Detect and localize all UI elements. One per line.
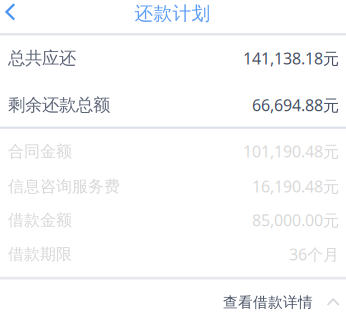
staticText: 合同金额: [8, 141, 72, 161]
staticText: 85,000.00元: [252, 209, 339, 231]
staticText: 36个月: [289, 244, 339, 265]
staticText: 101,190.48元: [243, 141, 339, 162]
button[interactable]: Back: [0, 0, 44, 33]
staticText: 借款期限: [8, 244, 72, 264]
staticText: 总共应还: [8, 48, 76, 69]
staticText: 剩余还款总额: [8, 94, 110, 116]
staticText: 借款金额: [8, 210, 72, 230]
staticText: 查看借款详情: [223, 293, 313, 311]
staticText: 信息咨询服务费: [8, 176, 120, 196]
staticText: 141,138.18元: [243, 48, 339, 69]
staticText: 16,190.48元: [252, 176, 339, 197]
staticText: 66,694.88元: [252, 94, 339, 116]
button[interactable]: 查看借款详情: [0, 281, 346, 322]
staticText: 还款计划: [134, 2, 210, 25]
